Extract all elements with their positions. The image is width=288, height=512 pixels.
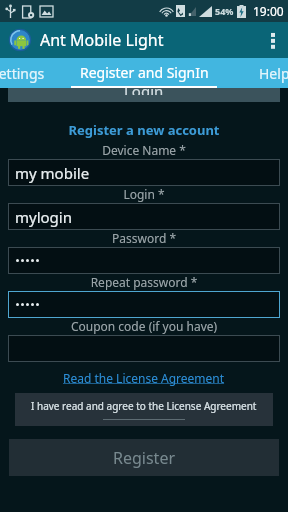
staticText: 54%: [215, 5, 234, 17]
button[interactable]: Login: [8, 88, 280, 102]
staticText: Device Name *: [0, 142, 288, 158]
button[interactable]: Settings: [0, 58, 54, 88]
staticText: mylogin: [15, 207, 72, 227]
staticText: Login *: [0, 186, 288, 202]
button[interactable]: Register and SignIn: [69, 58, 219, 88]
button[interactable]: Register: [9, 439, 279, 476]
staticText: Coupon code (if you have): [0, 318, 288, 334]
staticText: Repeat password *: [0, 274, 288, 290]
button[interactable]: mylogin: [8, 203, 280, 230]
staticText: Settings: [0, 64, 45, 83]
button[interactable]: Read the License Agreement: [0, 370, 288, 386]
staticText: Password *: [0, 230, 288, 246]
staticText: Ant Mobile Light: [40, 29, 164, 51]
staticText: I have read and agree to the License Agr…: [31, 399, 257, 413]
button[interactable]: my mobile: [8, 159, 280, 186]
staticText: 19:00: [253, 3, 284, 19]
button[interactable]: [8, 247, 280, 274]
staticText: my mobile: [15, 163, 90, 183]
staticText: Help: [259, 64, 288, 83]
staticText: Read the License Agreement: [63, 370, 225, 386]
button[interactable]: I have read and agree to the License Agr…: [15, 393, 273, 426]
button[interactable]: [8, 335, 280, 362]
button[interactable]: Help: [246, 58, 288, 88]
staticText: Register a new account: [0, 121, 288, 139]
staticText: Register and SignIn: [80, 63, 209, 82]
button[interactable]: [8, 291, 280, 318]
staticText: Login: [124, 88, 164, 95]
button[interactable]: More options: [258, 22, 288, 58]
staticText: Register: [113, 447, 176, 469]
